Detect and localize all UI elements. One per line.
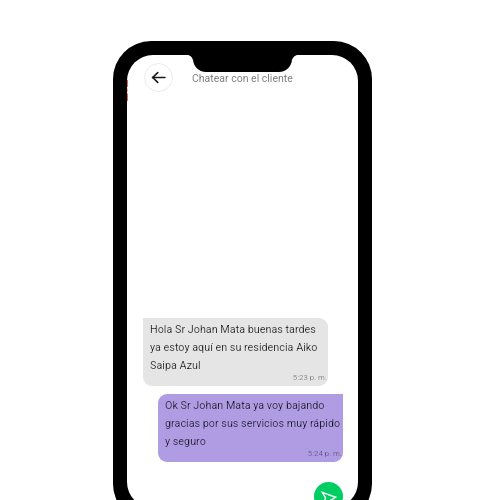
staticText: Chatear con el cliente — [192, 72, 293, 84]
button[interactable]: Hola Sr Johan Mata buenas tardes ya esto… — [143, 318, 328, 386]
staticText: Ok Sr Johan Mata ya voy bajando gracias … — [165, 399, 343, 448]
staticText: 5:24 p. m. — [165, 449, 342, 458]
button[interactable]: Back — [144, 63, 173, 92]
button[interactable]: Send message — [314, 482, 343, 500]
staticText: 5:23 p. m. — [150, 373, 327, 382]
staticText: Hola Sr Johan Mata buenas tardes ya esto… — [150, 323, 328, 372]
button[interactable]: Ok Sr Johan Mata ya voy bajando gracias … — [158, 394, 343, 462]
